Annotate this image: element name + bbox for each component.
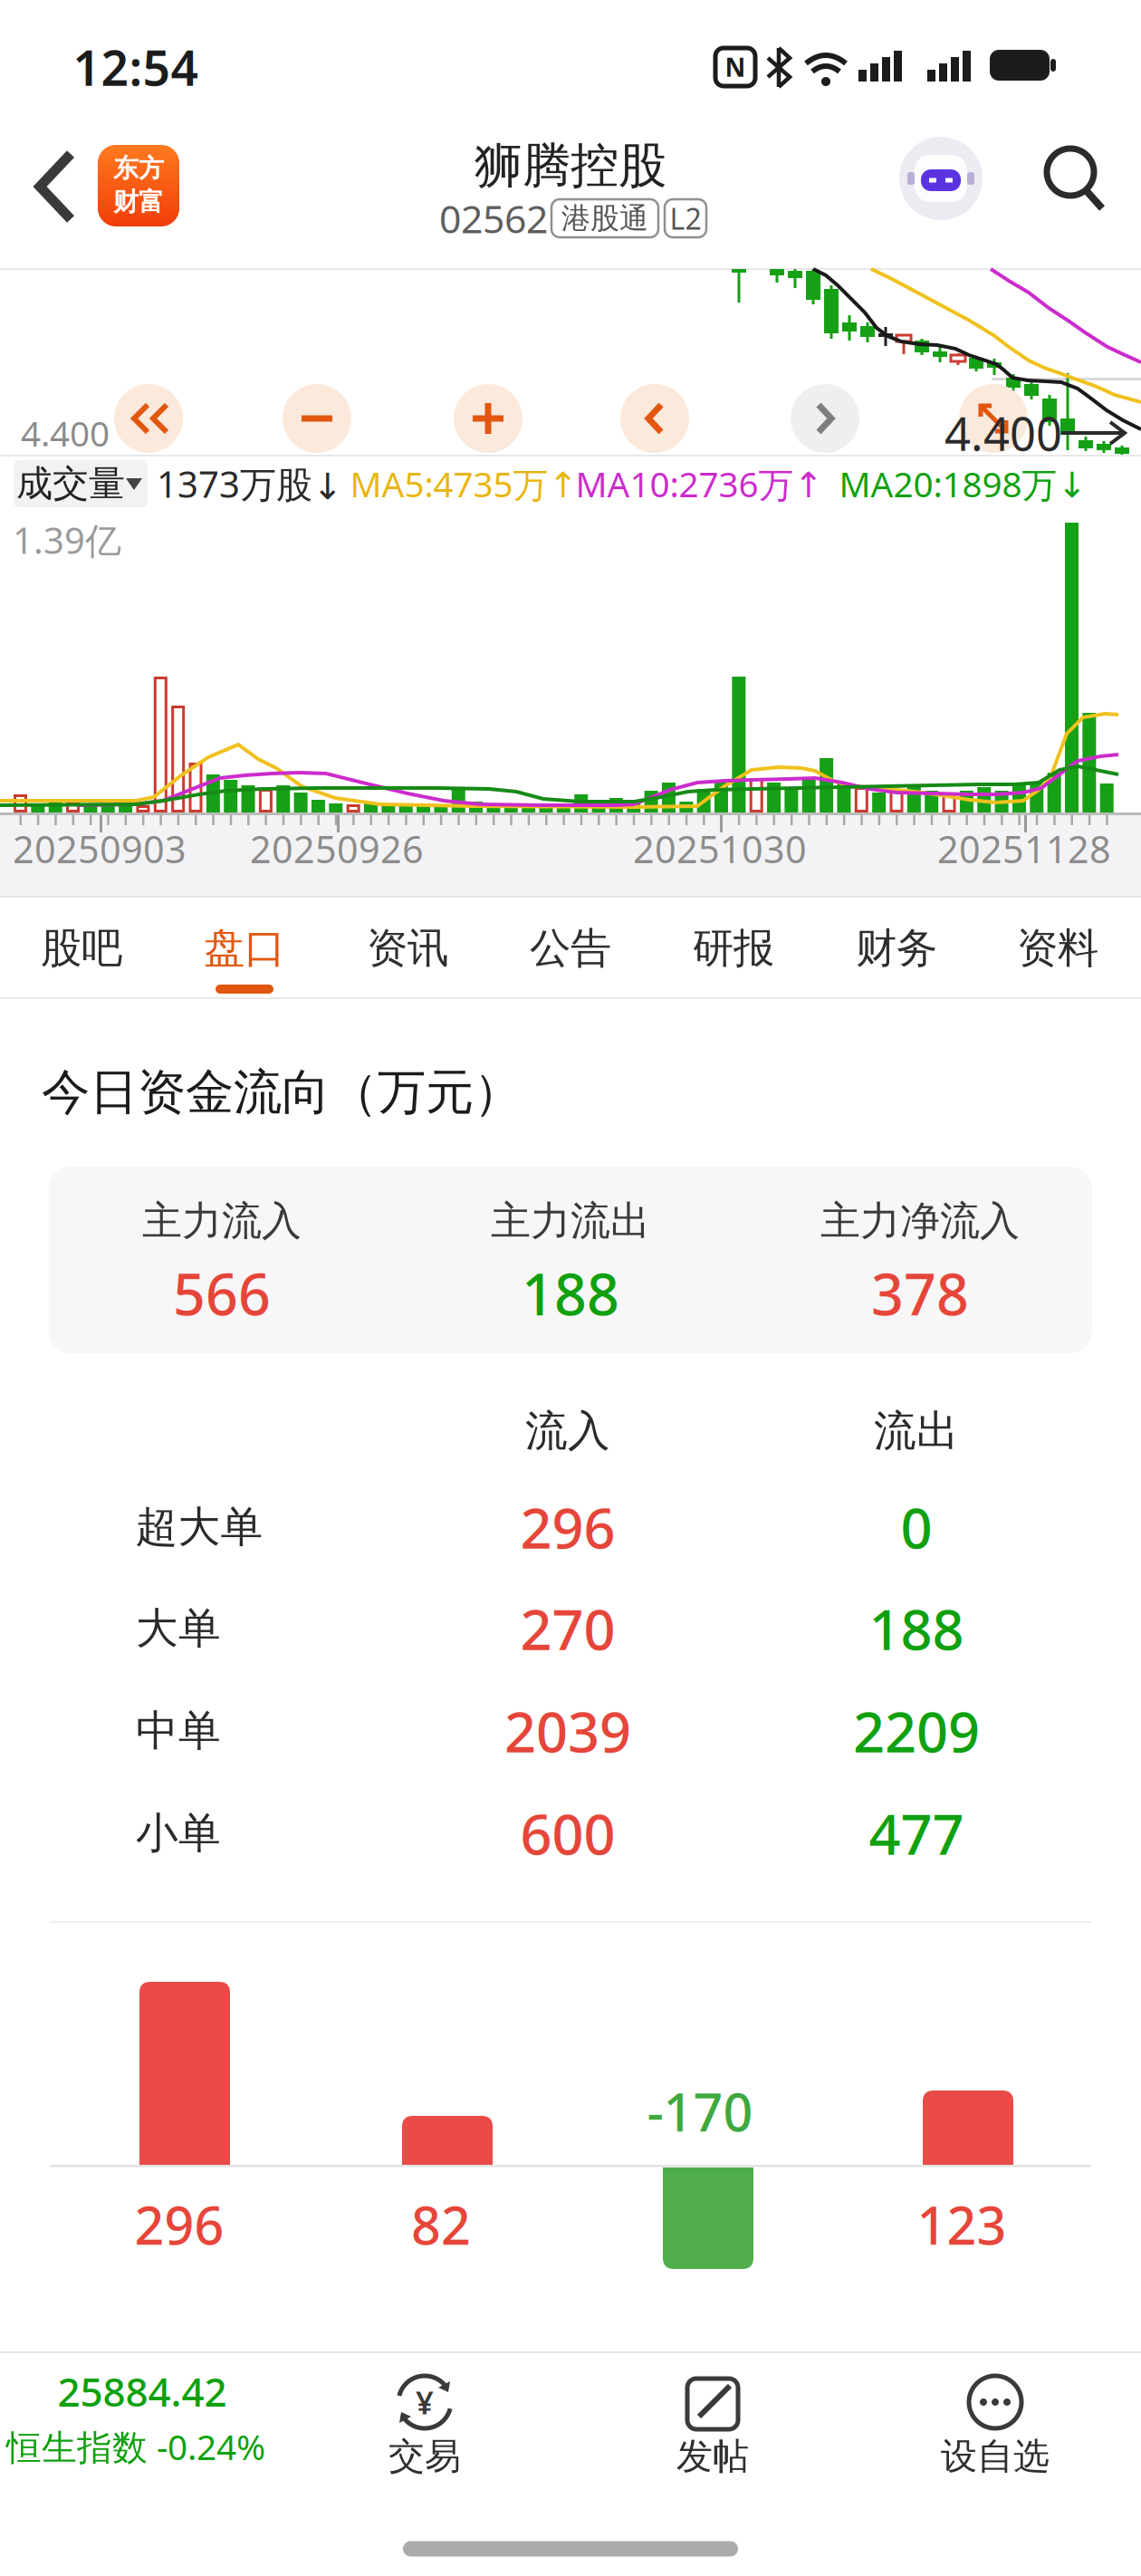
- staticText: 资讯: [367, 923, 448, 974]
- staticText: 主力净流入: [820, 1197, 1020, 1245]
- staticText: 600: [520, 1796, 615, 1870]
- staticText: 1373万股↓: [157, 460, 343, 508]
- staticText: 477: [869, 1796, 964, 1870]
- staticText: 20250903: [13, 824, 187, 874]
- staticText: 0: [901, 1490, 932, 1564]
- staticText: 188: [522, 1256, 619, 1331]
- staticText: 流入: [525, 1405, 610, 1457]
- staticText: 主力流入: [142, 1197, 302, 1245]
- staticText: 1.39亿: [13, 516, 121, 564]
- staticText: 270: [520, 1592, 615, 1665]
- staticText: 超大单: [135, 1501, 263, 1553]
- staticText: 378: [871, 1256, 969, 1331]
- staticText: 公告: [530, 923, 611, 974]
- staticText: 123: [917, 2190, 1007, 2259]
- staticText: 2039: [504, 1694, 631, 1768]
- staticText: 财务: [856, 923, 937, 974]
- staticText: 82: [411, 2190, 471, 2259]
- staticText: 12:54: [73, 35, 199, 99]
- staticText: MA5:4735万↑: [350, 460, 577, 507]
- staticText: 20250926: [250, 824, 424, 874]
- staticText: 大单: [136, 1603, 221, 1654]
- staticText: 188: [869, 1592, 964, 1665]
- staticText: -170: [647, 2077, 753, 2146]
- staticText: 主力流出: [491, 1197, 650, 1245]
- staticText: 东方: [113, 153, 164, 184]
- staticText: 20251030: [633, 824, 807, 874]
- staticText: ¥: [416, 2381, 434, 2423]
- staticText: 中单: [136, 1705, 221, 1757]
- staticText: 研报: [693, 923, 774, 974]
- staticText: 发帖: [676, 2434, 749, 2479]
- staticText: 小单: [136, 1807, 221, 1859]
- staticText: 4.400: [21, 410, 110, 456]
- staticText: 狮腾控股: [475, 136, 666, 195]
- staticText: 成交量: [16, 461, 125, 506]
- staticText: 资料: [1017, 923, 1098, 974]
- staticText: 296: [134, 2190, 224, 2259]
- staticText: MA20:1898万↓: [839, 460, 1086, 507]
- staticText: 盘口: [204, 923, 285, 974]
- staticText: 02562: [439, 193, 548, 244]
- staticText: 股吧: [41, 923, 122, 974]
- staticText: 今日资金流向（万元）: [42, 1063, 522, 1122]
- staticText: 20251128: [937, 824, 1111, 874]
- staticText: 财富: [113, 186, 164, 218]
- staticText: 2209: [853, 1694, 980, 1768]
- staticText: MA10:2736万↑: [575, 460, 823, 507]
- staticText: 4.400: [944, 403, 1062, 463]
- staticText: 566: [173, 1256, 271, 1331]
- staticText: N: [725, 50, 746, 84]
- staticText: 港股通: [561, 200, 648, 236]
- staticText: 流出: [874, 1405, 959, 1457]
- staticText: 恒生指数 -0.24%: [6, 2423, 265, 2470]
- staticText: 296: [520, 1490, 615, 1564]
- staticText: 设自选: [941, 2434, 1050, 2479]
- staticText: L2: [670, 199, 701, 238]
- staticText: 25884.42: [58, 2365, 227, 2418]
- staticText: 交易: [388, 2434, 461, 2479]
